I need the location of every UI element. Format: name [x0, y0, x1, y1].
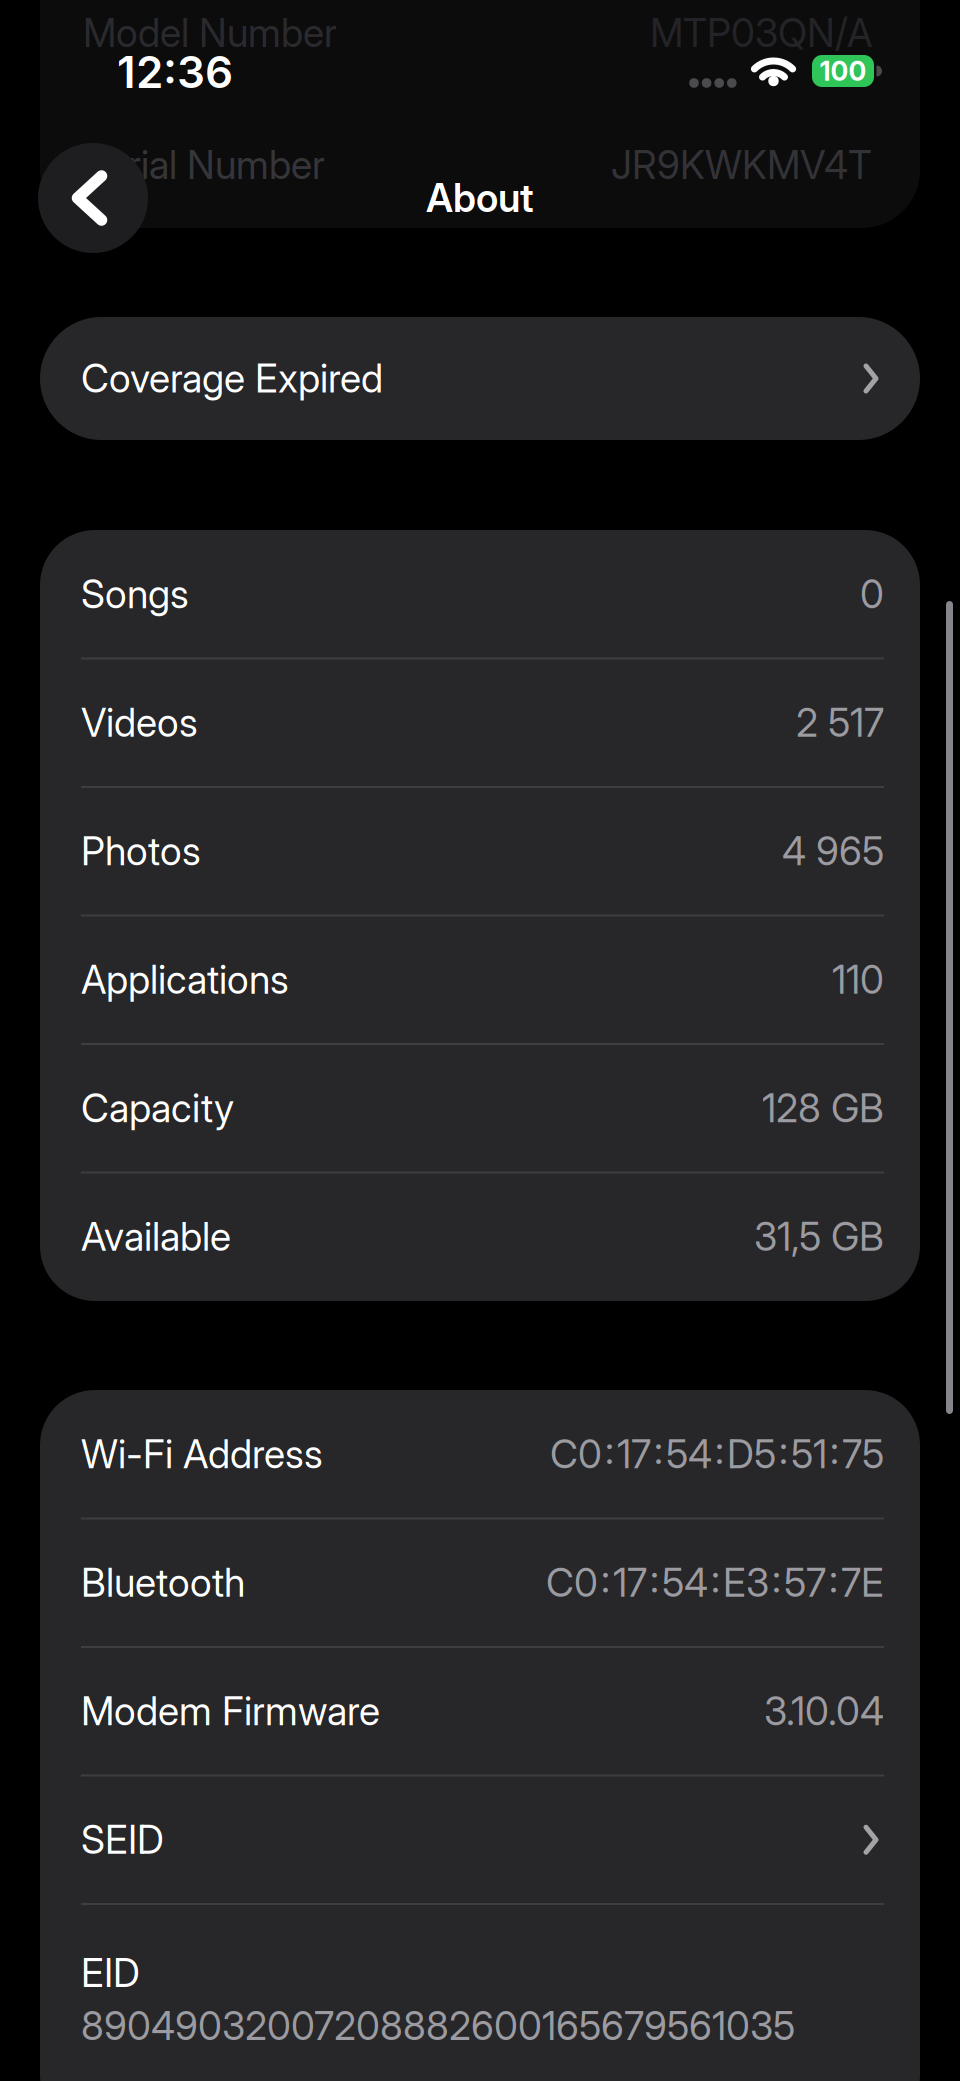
staticText: EID: [81, 1950, 140, 1996]
staticText: JR9KWKMV4T: [611, 142, 872, 188]
staticText: 4 965: [782, 828, 884, 874]
staticText: Songs: [81, 571, 189, 617]
staticText: MTP03QN/A: [650, 10, 872, 56]
staticText: Serial Number: [83, 142, 325, 188]
staticText: 0: [860, 571, 884, 617]
button[interactable]: Coverage Expired: [40, 317, 920, 440]
staticText: 100: [819, 55, 866, 87]
staticText: C0 : 17 : 54 : E3 : 57 : 7E: [546, 1560, 884, 1605]
button[interactable]: SEID: [40, 1775, 920, 1904]
staticText: Coverage Expired: [81, 356, 383, 401]
staticText: Model Number: [83, 10, 337, 56]
staticText: 3.10.04: [764, 1688, 884, 1734]
staticText: Modem Firmware: [81, 1688, 380, 1734]
staticText: 128 GB: [762, 1085, 884, 1131]
staticText: 89049032007208882600165679561035: [81, 2003, 795, 2049]
staticText: 110: [832, 957, 884, 1002]
staticText: Capacity: [81, 1085, 234, 1131]
staticText: 31,5 GB: [754, 1214, 884, 1259]
button[interactable]: Back: [38, 143, 148, 253]
staticText: 12:36: [117, 46, 233, 98]
staticText: 2 517: [796, 700, 884, 745]
staticText: Videos: [81, 700, 198, 745]
staticText: Wi-Fi Address: [81, 1431, 323, 1477]
staticText: SEID: [81, 1817, 164, 1862]
staticText: C0 : 17 : 54 : D5 : 51 : 75: [550, 1431, 884, 1477]
staticText: Bluetooth: [81, 1560, 245, 1605]
staticText: Photos: [81, 828, 201, 874]
staticText: Available: [81, 1214, 231, 1259]
staticText: About: [426, 175, 534, 221]
staticText: Applications: [81, 957, 289, 1002]
